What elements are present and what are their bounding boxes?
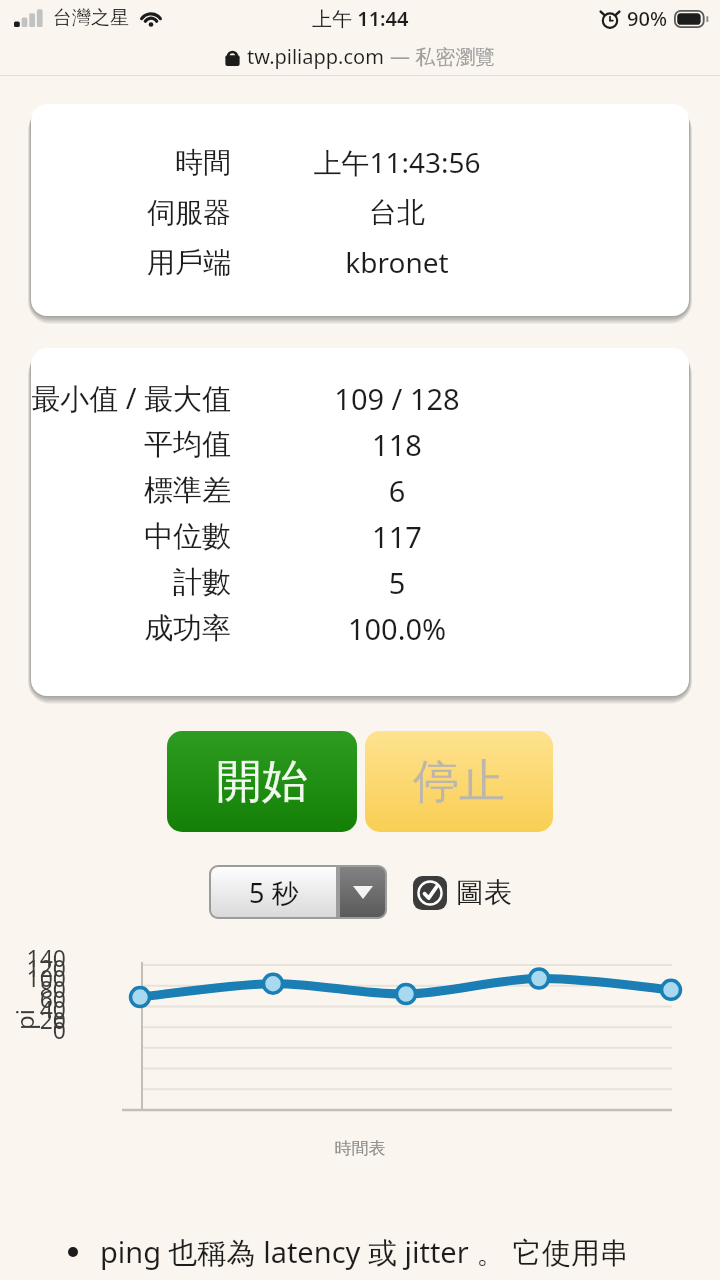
button[interactable]: 間隔 5 秒 xyxy=(209,865,387,919)
staticText: 120 xyxy=(0,952,66,983)
staticText: 20 xyxy=(0,1004,66,1035)
staticText: kbronet xyxy=(237,243,557,281)
staticText: 117 xyxy=(237,517,557,556)
staticText: 圖表 xyxy=(456,875,512,910)
staticText: 最小值 / 最大值 xyxy=(31,378,231,418)
staticText: 118 xyxy=(237,425,557,464)
staticText: 6 xyxy=(237,471,557,510)
staticText: 40 xyxy=(0,993,66,1024)
staticText: 標準差 xyxy=(31,472,231,509)
staticText: tw.piliapp.com xyxy=(247,43,384,70)
button[interactable]: 圖表 xyxy=(413,875,512,910)
staticText: ping 也稱為 latency 或 jitter 。 它使用串 xyxy=(100,1232,629,1272)
staticText: 開始 xyxy=(216,753,308,811)
staticText: 109 / 128 xyxy=(237,379,557,418)
staticText: 成功率 xyxy=(31,610,231,647)
staticText: 平均值 xyxy=(31,426,231,463)
staticText: 140 xyxy=(0,942,66,973)
staticText: 停止 xyxy=(413,753,505,811)
staticText: 5 xyxy=(237,563,557,602)
staticText: — 私密瀏覽 xyxy=(390,43,496,70)
staticText: 伺服器 xyxy=(31,195,231,230)
staticText: 用戶端 xyxy=(31,245,231,280)
staticText: 中位數 xyxy=(31,518,231,555)
staticText: 台北 xyxy=(237,195,557,230)
button[interactable]: 開始 xyxy=(167,731,357,832)
staticText: 上午 11:44 xyxy=(312,5,409,32)
staticText: 時間表 xyxy=(0,1138,720,1159)
staticText: 80 xyxy=(0,973,66,1004)
staticText: 60 xyxy=(0,983,66,1014)
staticText: 100.0% xyxy=(237,609,557,648)
button[interactable]: 停止 xyxy=(365,731,553,832)
staticText: 時間 xyxy=(31,145,231,180)
staticText: 90% xyxy=(627,5,667,32)
staticText: 100 xyxy=(0,962,66,993)
staticText: 計數 xyxy=(31,564,231,601)
staticText: 0 xyxy=(0,1014,66,1045)
staticText: ping xyxy=(8,1002,64,1030)
staticText: 5 秒 xyxy=(249,874,299,911)
staticText: 台灣之星 xyxy=(53,6,129,30)
staticText: 上午11:43:56 xyxy=(237,143,557,181)
